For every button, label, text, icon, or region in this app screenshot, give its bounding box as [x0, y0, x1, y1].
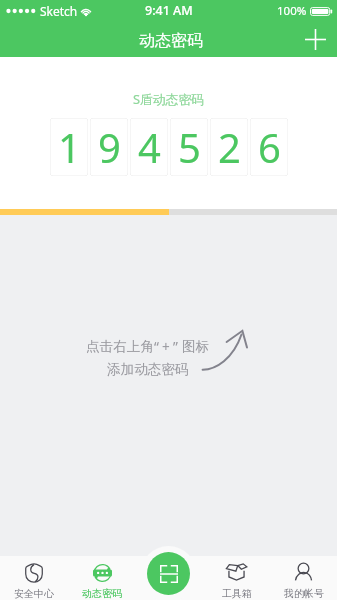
button[interactable]: Add: [301, 24, 337, 57]
staticText: 我的帐号: [284, 587, 324, 600]
staticText: 点击右上角: [86, 338, 154, 355]
button[interactable]: 安全中心: [0, 556, 68, 600]
button[interactable]: Scan: [147, 552, 190, 595]
staticText: 1: [58, 120, 81, 174]
staticText: 6: [258, 120, 281, 174]
staticText: Sketch: [40, 3, 78, 19]
staticText: 图标: [182, 338, 210, 355]
button[interactable]: 我的帐号: [270, 556, 337, 600]
staticText: 100%: [277, 3, 307, 19]
button[interactable]: 工具箱: [203, 556, 270, 600]
staticText: 4: [138, 120, 161, 174]
staticText: 动态密码: [139, 31, 203, 51]
staticText: 动态密码: [82, 587, 122, 600]
button[interactable]: 动态密码: [68, 556, 136, 600]
staticText: 9:41 AM: [145, 2, 193, 19]
staticText: 安全中心: [14, 587, 54, 600]
staticText: S盾动态密码: [133, 90, 205, 107]
staticText: 工具箱: [222, 587, 252, 600]
staticText: 9: [98, 120, 121, 174]
staticText: 2: [218, 120, 241, 174]
staticText: “+”: [154, 337, 182, 356]
staticText: 添加动态密码: [107, 361, 189, 378]
staticText: 5: [178, 120, 201, 174]
